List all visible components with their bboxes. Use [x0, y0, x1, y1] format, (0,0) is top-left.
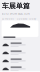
staticText: 车展单篇: [2, 1, 30, 11]
button[interactable]: [0, 49, 40, 57]
staticText: 32 models · updated today: [2, 17, 36, 20]
button[interactable]: [0, 65, 40, 72]
button[interactable]: [0, 57, 40, 65]
button[interactable]: [0, 41, 40, 49]
staticText: AUTO SHOW SELECTION: [2, 12, 30, 16]
